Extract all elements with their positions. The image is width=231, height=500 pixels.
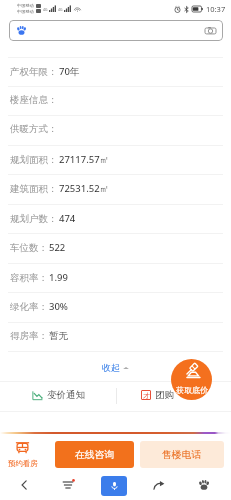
button[interactable]: Menu [52, 474, 83, 496]
button[interactable]: Home [188, 474, 219, 496]
staticText: 在线咨询 [75, 449, 115, 461]
button[interactable]: 产权年限： [0, 57, 231, 86]
button[interactable]: 才 [139, 387, 176, 403]
button[interactable] [9, 20, 223, 41]
button[interactable]: 收起 [94, 359, 137, 376]
staticText: 规划面积： [10, 154, 58, 166]
button[interactable]: 预约看房 [7, 438, 47, 470]
staticText: 4G [58, 7, 63, 12]
staticText: 中国移动 [17, 9, 34, 14]
button[interactable]: 绿化率： [0, 292, 231, 321]
button[interactable]: Back [8, 474, 39, 496]
staticText: 变价通知 [47, 389, 85, 401]
button[interactable]: 楼座信息： [0, 86, 231, 115]
staticText: 474 [59, 212, 76, 225]
staticText: 4G [43, 7, 48, 12]
button[interactable]: Voice search [101, 476, 127, 496]
button[interactable]: 变价通知 [30, 387, 87, 403]
staticText: 供暖方式： [10, 123, 58, 135]
button[interactable]: 规划户数： [0, 204, 231, 233]
staticText: 楼座信息： [10, 94, 58, 106]
staticText: 建筑面积： [10, 183, 58, 195]
staticText: 才 [143, 391, 150, 400]
staticText: 售楼电话 [162, 449, 202, 461]
staticText: 30% [49, 300, 68, 313]
staticText: 72531.52㎡ [59, 182, 110, 195]
staticText: 1.99 [49, 271, 68, 284]
button[interactable]: 获取底价 [171, 359, 212, 400]
button[interactable]: 售楼电话 [140, 441, 224, 468]
staticText: 暂无 [49, 330, 68, 342]
button[interactable]: 容积率： [0, 263, 231, 292]
staticText: 获取底价 [176, 385, 208, 395]
button[interactable]: Share [143, 474, 174, 496]
button[interactable]: 供暖方式： [0, 115, 231, 144]
staticText: 522 [49, 241, 66, 254]
staticText: 27117.57㎡ [59, 153, 110, 166]
button[interactable]: 建筑面积： [0, 174, 231, 203]
button[interactable]: 在线咨询 [55, 441, 134, 468]
staticText: 产权年限： [10, 66, 58, 78]
staticText: 容积率： [10, 272, 48, 284]
staticText: 中国移动 [17, 3, 34, 8]
staticText: 70年 [59, 65, 80, 78]
staticText: 预约看房 [8, 459, 38, 468]
staticText: 规划户数： [10, 213, 58, 225]
button[interactable]: 规划面积： [0, 145, 231, 174]
staticText: 10:37 [206, 4, 226, 14]
staticText: 团购 [155, 389, 174, 401]
staticText: 车位数： [10, 242, 48, 254]
staticText: 得房率： [10, 330, 48, 342]
staticText: 绿化率： [10, 301, 48, 313]
button[interactable]: 车位数： [0, 233, 231, 262]
staticText: 收起 [102, 362, 120, 373]
button[interactable]: 得房率： [0, 322, 231, 351]
